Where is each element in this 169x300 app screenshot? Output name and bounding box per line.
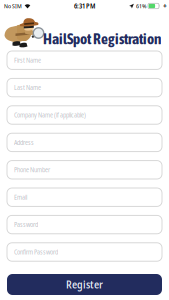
- staticText: Email: [14, 193, 27, 201]
- staticText: Register: [66, 278, 103, 291]
- staticText: Phone Number: [14, 165, 50, 174]
- staticText: HailSpot Registration: [43, 30, 161, 48]
- staticText: No SIM: [4, 2, 22, 10]
- staticText: First Name: [14, 56, 41, 64]
- staticText: Company Name (if applicable): [14, 111, 86, 119]
- staticText: Confirm Password: [14, 248, 58, 256]
- staticText: Address: [14, 138, 34, 147]
- button[interactable]: Register: [7, 274, 162, 295]
- staticText: Last Name: [14, 83, 41, 92]
- staticText: 6:31 PM: [74, 2, 95, 10]
- staticText: Password: [14, 220, 38, 229]
- staticText: +: [163, 1, 167, 11]
- staticText: 61%: [136, 2, 146, 10]
